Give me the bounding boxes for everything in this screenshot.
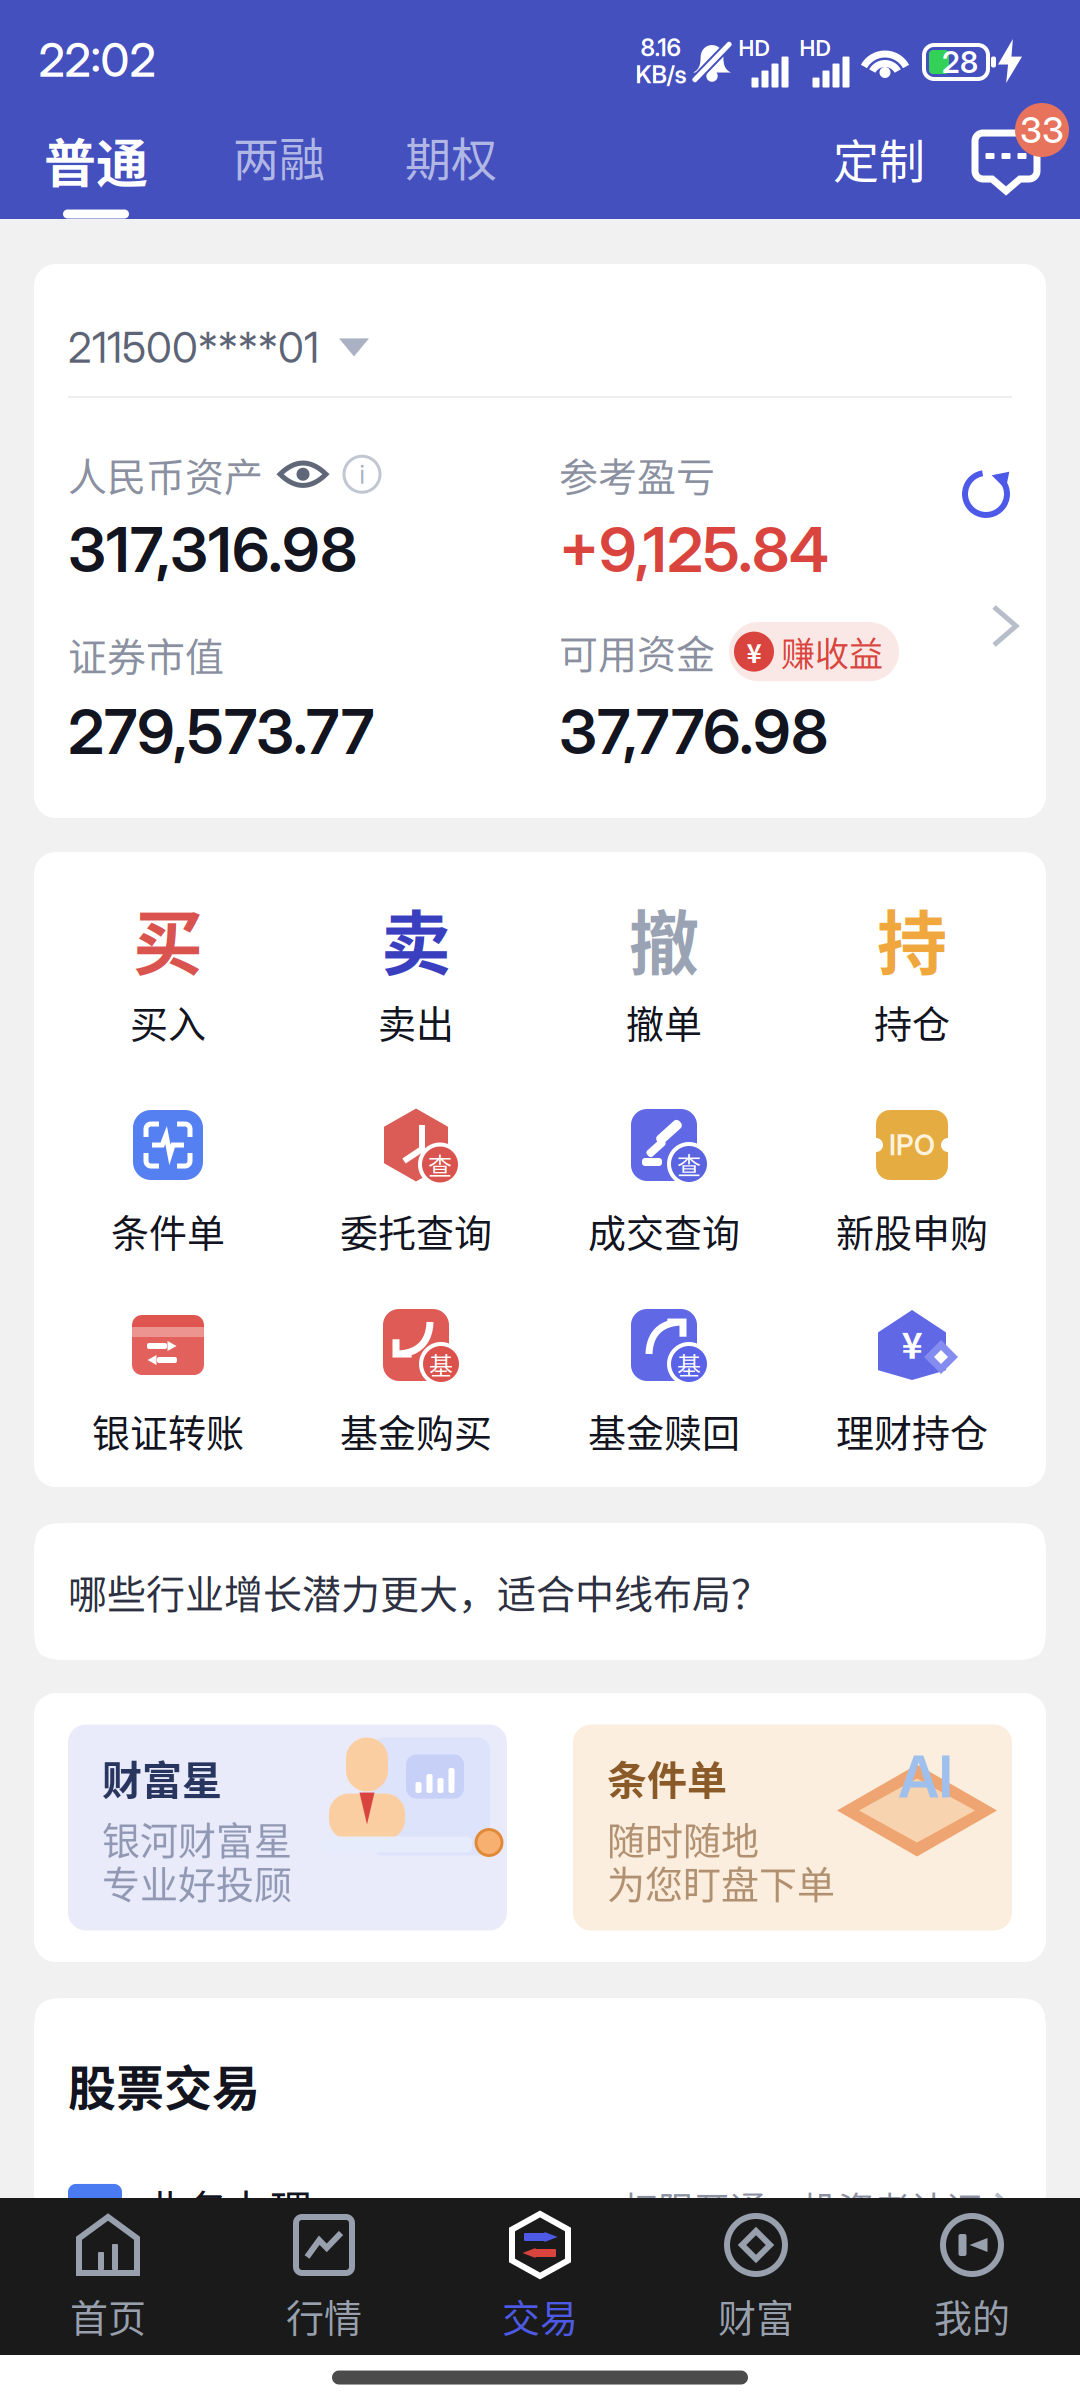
staticText: 8.16	[640, 33, 681, 62]
staticText: 22:02	[38, 32, 155, 88]
staticText: i	[359, 458, 364, 490]
staticText: 专业好投顾	[102, 1854, 292, 1909]
staticText: 317,316.98	[68, 512, 357, 587]
staticText: 查	[677, 1147, 701, 1181]
staticText: 赚收益	[781, 627, 883, 676]
staticText: 条件单	[111, 1203, 225, 1258]
staticText: 为您盯盘下单	[607, 1854, 835, 1909]
button[interactable]: ¥	[788, 1307, 1036, 1458]
staticText: 证券市值	[68, 626, 224, 682]
button[interactable]: 我的	[864, 2214, 1080, 2343]
staticText: 委托查询	[340, 1203, 492, 1258]
staticText: 理财持仓	[836, 1403, 988, 1458]
staticText: KB/s	[635, 60, 686, 89]
staticText: 参考盈亏	[559, 446, 715, 502]
staticText: 28	[942, 44, 978, 80]
staticText: 权限开通、投资者认证	[622, 2182, 982, 2234]
staticText: 成交查询	[588, 1203, 740, 1258]
staticText: 可用资金	[559, 623, 715, 680]
staticText: 行情	[286, 2288, 362, 2343]
staticText: 211500****01	[68, 322, 319, 373]
staticText: 卖	[381, 888, 451, 990]
button[interactable]: 行情	[216, 2214, 432, 2343]
staticText: 银证转账	[92, 1403, 244, 1458]
staticText: 卖出	[378, 994, 454, 1049]
staticText: 随时随地	[607, 1810, 759, 1865]
button[interactable]: 哪些行业增长潜力更大，适合中线布局？	[34, 1523, 1046, 1660]
staticText: 期权	[405, 123, 497, 189]
staticText: ¥	[901, 1317, 922, 1369]
staticText: HD	[799, 35, 830, 61]
staticText: 财富星	[102, 1748, 222, 1806]
staticText: 人民币资产	[68, 446, 263, 502]
staticText: 基	[429, 1347, 453, 1381]
staticText: AI	[898, 1741, 953, 1812]
button[interactable]: 持	[788, 900, 1036, 1049]
staticText: 279,573.77	[68, 694, 374, 769]
staticText: ¥	[746, 633, 761, 670]
button[interactable]: IPO	[788, 1107, 1036, 1258]
staticText: 基	[677, 1347, 701, 1381]
button[interactable]: AI	[573, 1724, 1012, 1930]
staticText: 条件单	[607, 1748, 727, 1806]
button[interactable]: 财富星	[68, 1724, 507, 1930]
button[interactable]: 期权	[0, 100, 1080, 219]
button[interactable]: 定制	[0, 100, 1080, 219]
staticText: 哪些行业增长潜力更大，适合中线布局？	[68, 1563, 770, 1620]
button[interactable]: 211500****01	[34, 264, 1046, 411]
staticText: 买入	[130, 994, 206, 1049]
staticText: 财富	[718, 2288, 794, 2343]
staticText: 持仓	[874, 994, 950, 1049]
staticText: 买	[133, 888, 203, 990]
staticText: 普通	[44, 122, 148, 198]
staticText: 两融	[233, 123, 325, 189]
staticText: 银河财富星	[102, 1810, 292, 1865]
staticText: 37,776.98	[559, 694, 828, 769]
staticText: HD	[738, 35, 769, 61]
button[interactable]: 卖	[292, 900, 540, 1049]
button[interactable]: 买	[44, 900, 292, 1049]
button[interactable]: 普通	[0, 100, 150, 219]
staticText: 业务办理	[144, 2177, 312, 2238]
button[interactable]: 查	[540, 1107, 788, 1258]
button[interactable]: 银证转账	[44, 1307, 292, 1458]
staticText: 基金赎回	[588, 1403, 740, 1458]
button[interactable]: 基	[292, 1307, 540, 1458]
button[interactable]: 条件单	[44, 1107, 292, 1258]
staticText: 首页	[70, 2288, 146, 2343]
button[interactable]: Messages	[0, 100, 1080, 219]
button[interactable]: 交易	[432, 2214, 648, 2343]
staticText: 交易	[502, 2288, 578, 2343]
staticText: 定制	[833, 125, 925, 191]
staticText: 查	[428, 1147, 452, 1182]
button[interactable]: 财富	[648, 2214, 864, 2343]
staticText: 撤单	[626, 994, 702, 1049]
button[interactable]: 首页	[0, 2214, 216, 2343]
staticText: 33	[1020, 108, 1064, 152]
staticText: 我的	[934, 2288, 1010, 2343]
staticText: 撤	[629, 888, 699, 990]
staticText: +9,125.84	[559, 512, 829, 587]
button[interactable]: 两融	[0, 100, 1080, 219]
staticText: 新股申购	[836, 1203, 988, 1258]
button[interactable]: 撤	[540, 900, 788, 1049]
staticText: 股票交易	[68, 2050, 260, 2119]
staticText: IPO	[889, 1128, 935, 1162]
staticText: 基金购买	[340, 1403, 492, 1458]
button[interactable]: Refresh	[946, 454, 1026, 534]
button[interactable]: 基	[540, 1307, 788, 1458]
button[interactable]: 查	[292, 1107, 540, 1258]
staticText: 持	[877, 888, 947, 990]
